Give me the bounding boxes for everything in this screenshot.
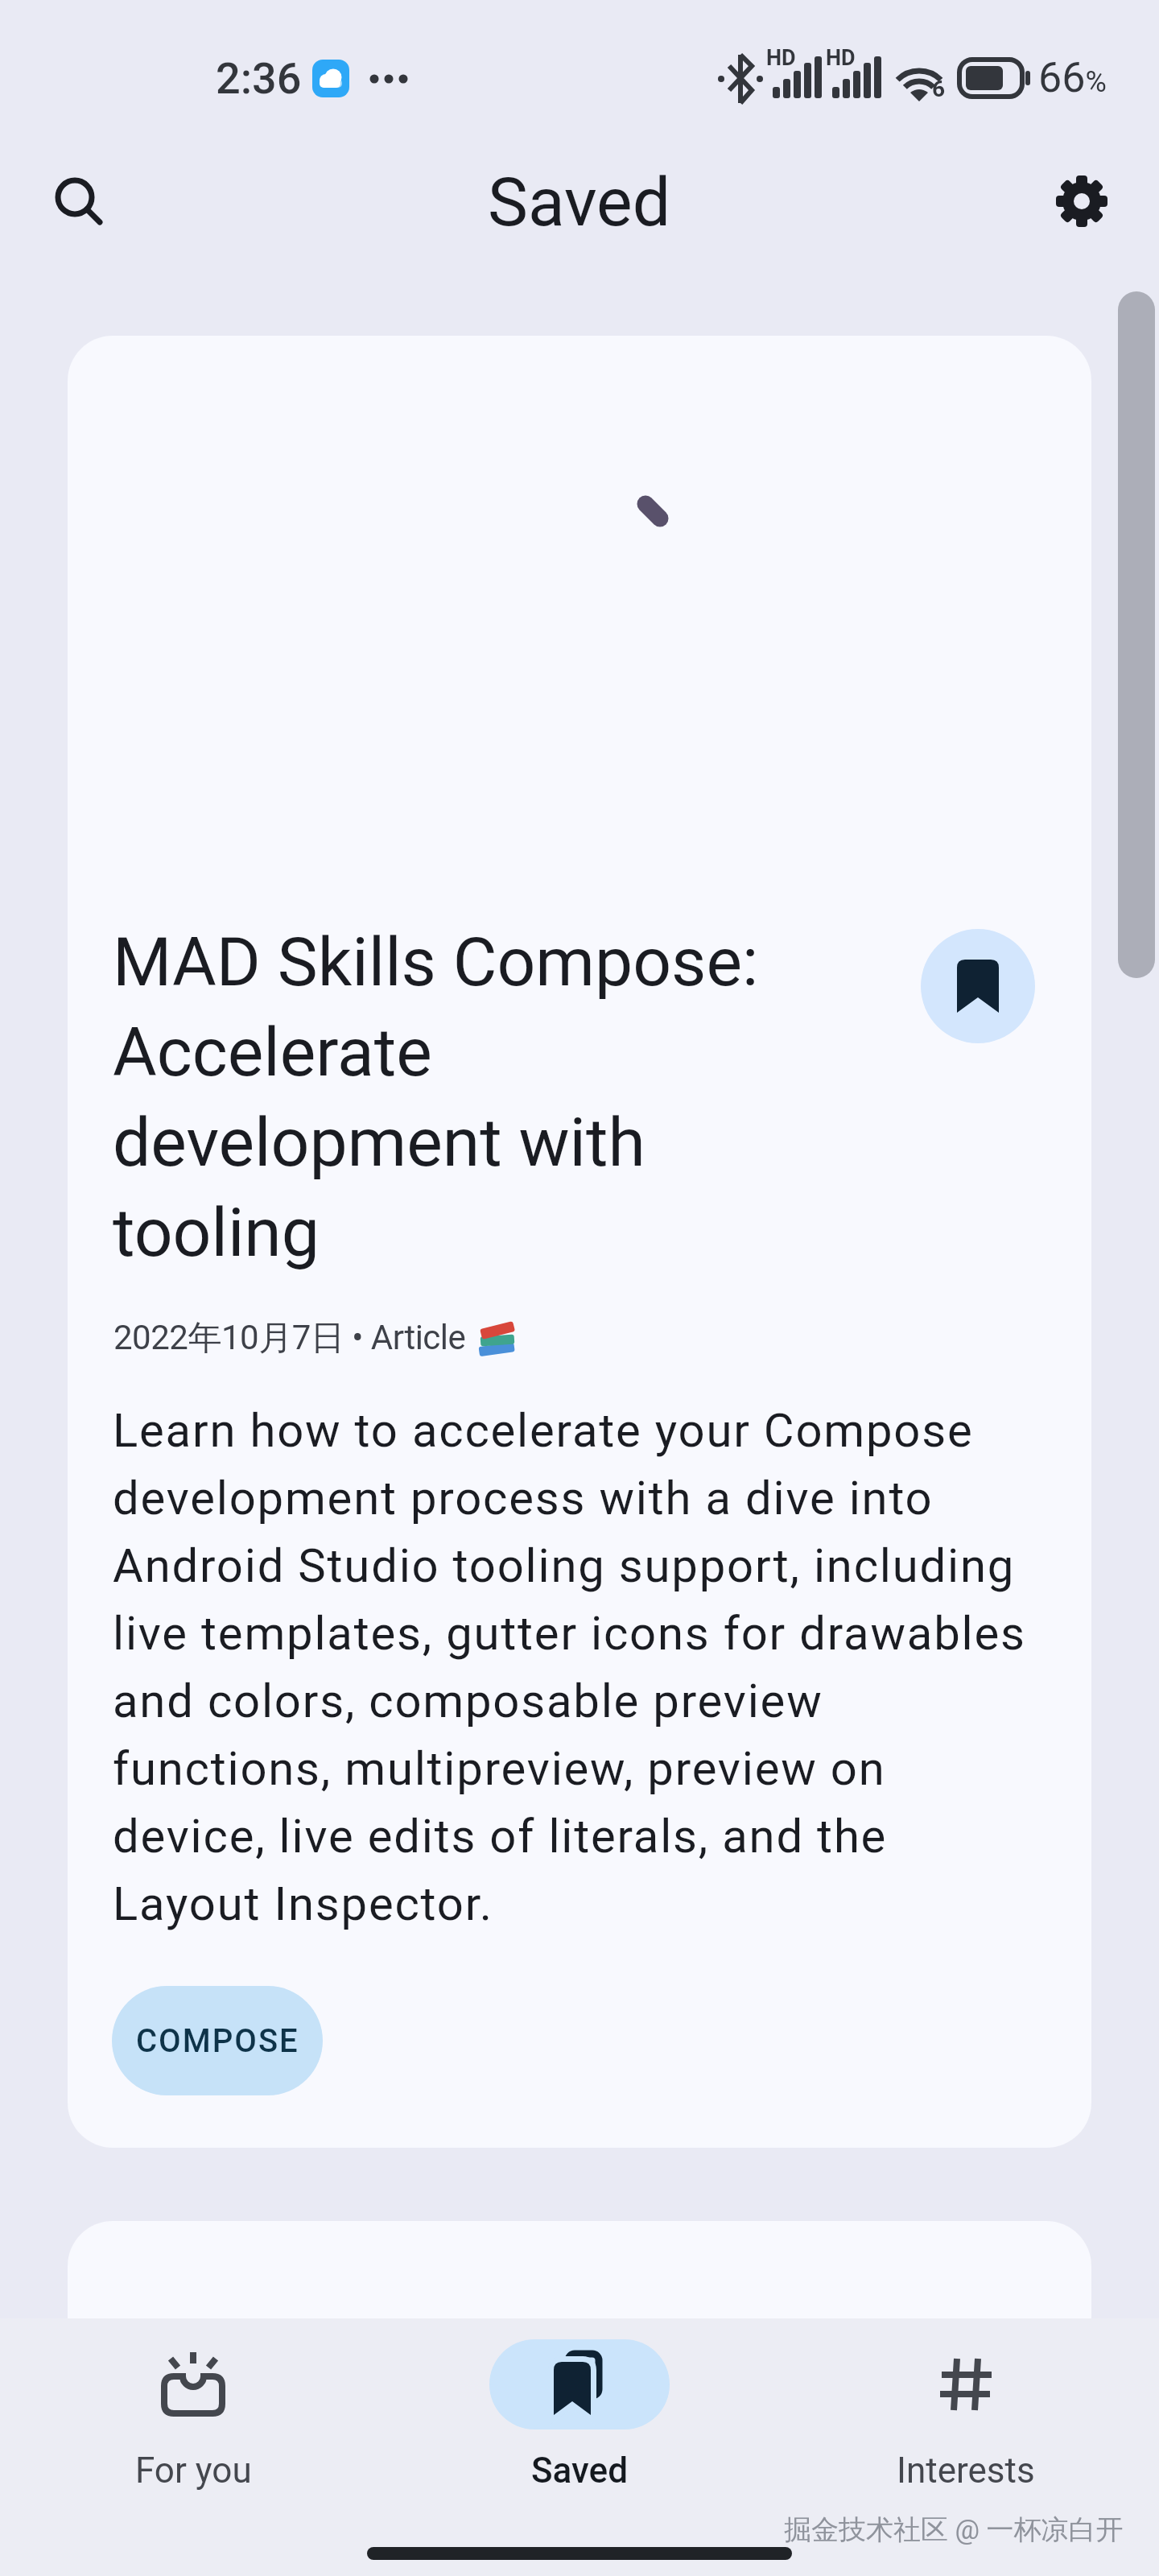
button[interactable]: MAD Skills Compose: Accelerate developme… [68,336,1091,2148]
staticText: COMPOSE [136,2022,299,2060]
button[interactable] [1048,167,1116,235]
button[interactable]: Interests [773,2318,1159,2491]
staticText: 6 [932,76,946,102]
staticText: HD [826,45,856,71]
staticText: 2:36 [216,53,302,104]
staticText: For you [135,2450,252,2491]
staticText: HD [766,45,796,71]
staticText: Saved [488,163,671,242]
button[interactable] [45,167,113,235]
staticText: Interests [897,2450,1035,2491]
button[interactable]: Saved [386,2318,773,2491]
staticText: Learn how to accelerate your Compose dev… [113,1403,1026,1931]
button[interactable]: COMPOSE [112,1986,323,2095]
button[interactable] [68,2221,1091,2576]
button[interactable]: For you [0,2318,386,2491]
button[interactable] [921,929,1035,1043]
staticText: Saved [531,2450,629,2491]
staticText: 掘金技术社区 @ 一杯凉白开 [784,2512,1124,2547]
staticText: 66% [1038,53,1107,102]
staticText: 2022年10月7日 • Article [113,1317,466,1360]
staticText: MAD Skills Compose: Accelerate developme… [113,923,759,1272]
